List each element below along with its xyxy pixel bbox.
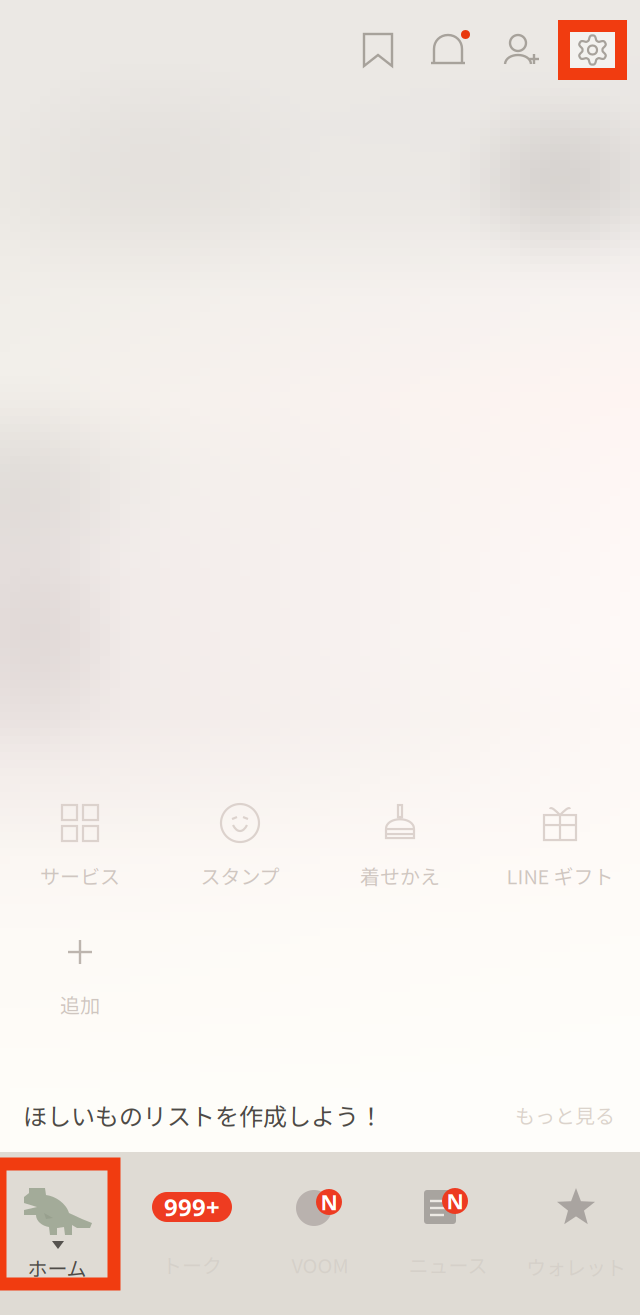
- staticText: N: [446, 1187, 463, 1215]
- button[interactable]: LINE ギフト: [480, 792, 640, 897]
- staticText: ホーム: [27, 1253, 86, 1282]
- button[interactable]: 999+: [128, 1152, 256, 1315]
- button[interactable]: スタンプ: [160, 792, 320, 897]
- staticText: N: [320, 1188, 337, 1216]
- staticText: サービス: [40, 861, 120, 890]
- staticText: スタンプ: [200, 861, 279, 890]
- button[interactable]: Keep: [342, 21, 414, 79]
- staticText: 着せかえ: [360, 861, 440, 890]
- staticText: LINE ギフト: [506, 861, 613, 890]
- staticText: 追加: [60, 990, 100, 1019]
- button[interactable]: ほしいものリストを作成しよう！: [0, 1078, 640, 1152]
- staticText: VOOM: [291, 1250, 348, 1279]
- button[interactable]: ウォレット: [512, 1152, 640, 1315]
- button[interactable]: 着せかえ: [320, 792, 480, 897]
- button[interactable]: ホーム: [0, 1152, 114, 1284]
- staticText: ほしいものリストを作成しよう！: [23, 1098, 383, 1132]
- button[interactable]: 追加: [0, 921, 160, 1026]
- button[interactable]: Settings: [558, 20, 627, 80]
- button[interactable]: サービス: [0, 792, 160, 897]
- staticText: もっと見る: [515, 1100, 615, 1129]
- button[interactable]: N: [384, 1152, 512, 1315]
- staticText: 999+: [164, 1191, 220, 1223]
- button[interactable]: N: [256, 1152, 384, 1315]
- button[interactable]: Notifications: [414, 21, 488, 79]
- button[interactable]: Add friends: [488, 21, 558, 79]
